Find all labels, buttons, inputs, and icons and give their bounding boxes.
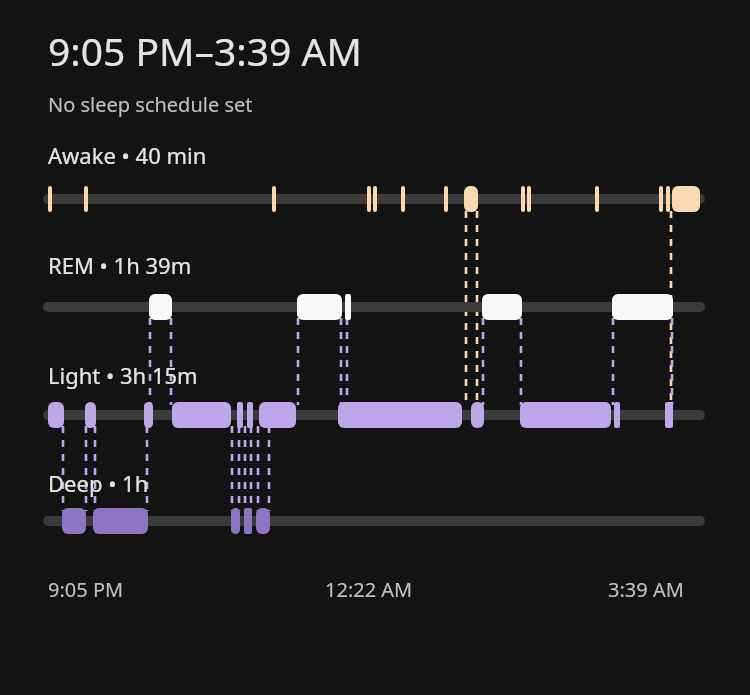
staticText: 9:05 PM <box>48 576 124 603</box>
staticText: Awake • 40 min <box>48 140 207 170</box>
staticText: 12:22 AM <box>325 576 413 603</box>
button[interactable]: 9:05 PM–3:39 AM <box>48 24 750 118</box>
staticText: 3:39 AM <box>608 576 684 603</box>
staticText: REM • 1h 39m <box>48 250 192 280</box>
staticText: Light • 3h 15m <box>48 360 198 390</box>
button[interactable]: Light • 3h 15m <box>48 360 750 390</box>
staticText: 9:05 PM–3:39 AM <box>48 24 362 77</box>
button[interactable]: Deep • 1h <box>48 468 750 498</box>
staticText: Deep • 1h <box>48 468 149 498</box>
button[interactable]: REM • 1h 39m <box>48 250 750 280</box>
staticText: No sleep schedule set <box>48 91 253 118</box>
button[interactable]: Awake • 40 min <box>48 140 750 170</box>
button[interactable]: Sleep stages chart <box>0 118 750 638</box>
